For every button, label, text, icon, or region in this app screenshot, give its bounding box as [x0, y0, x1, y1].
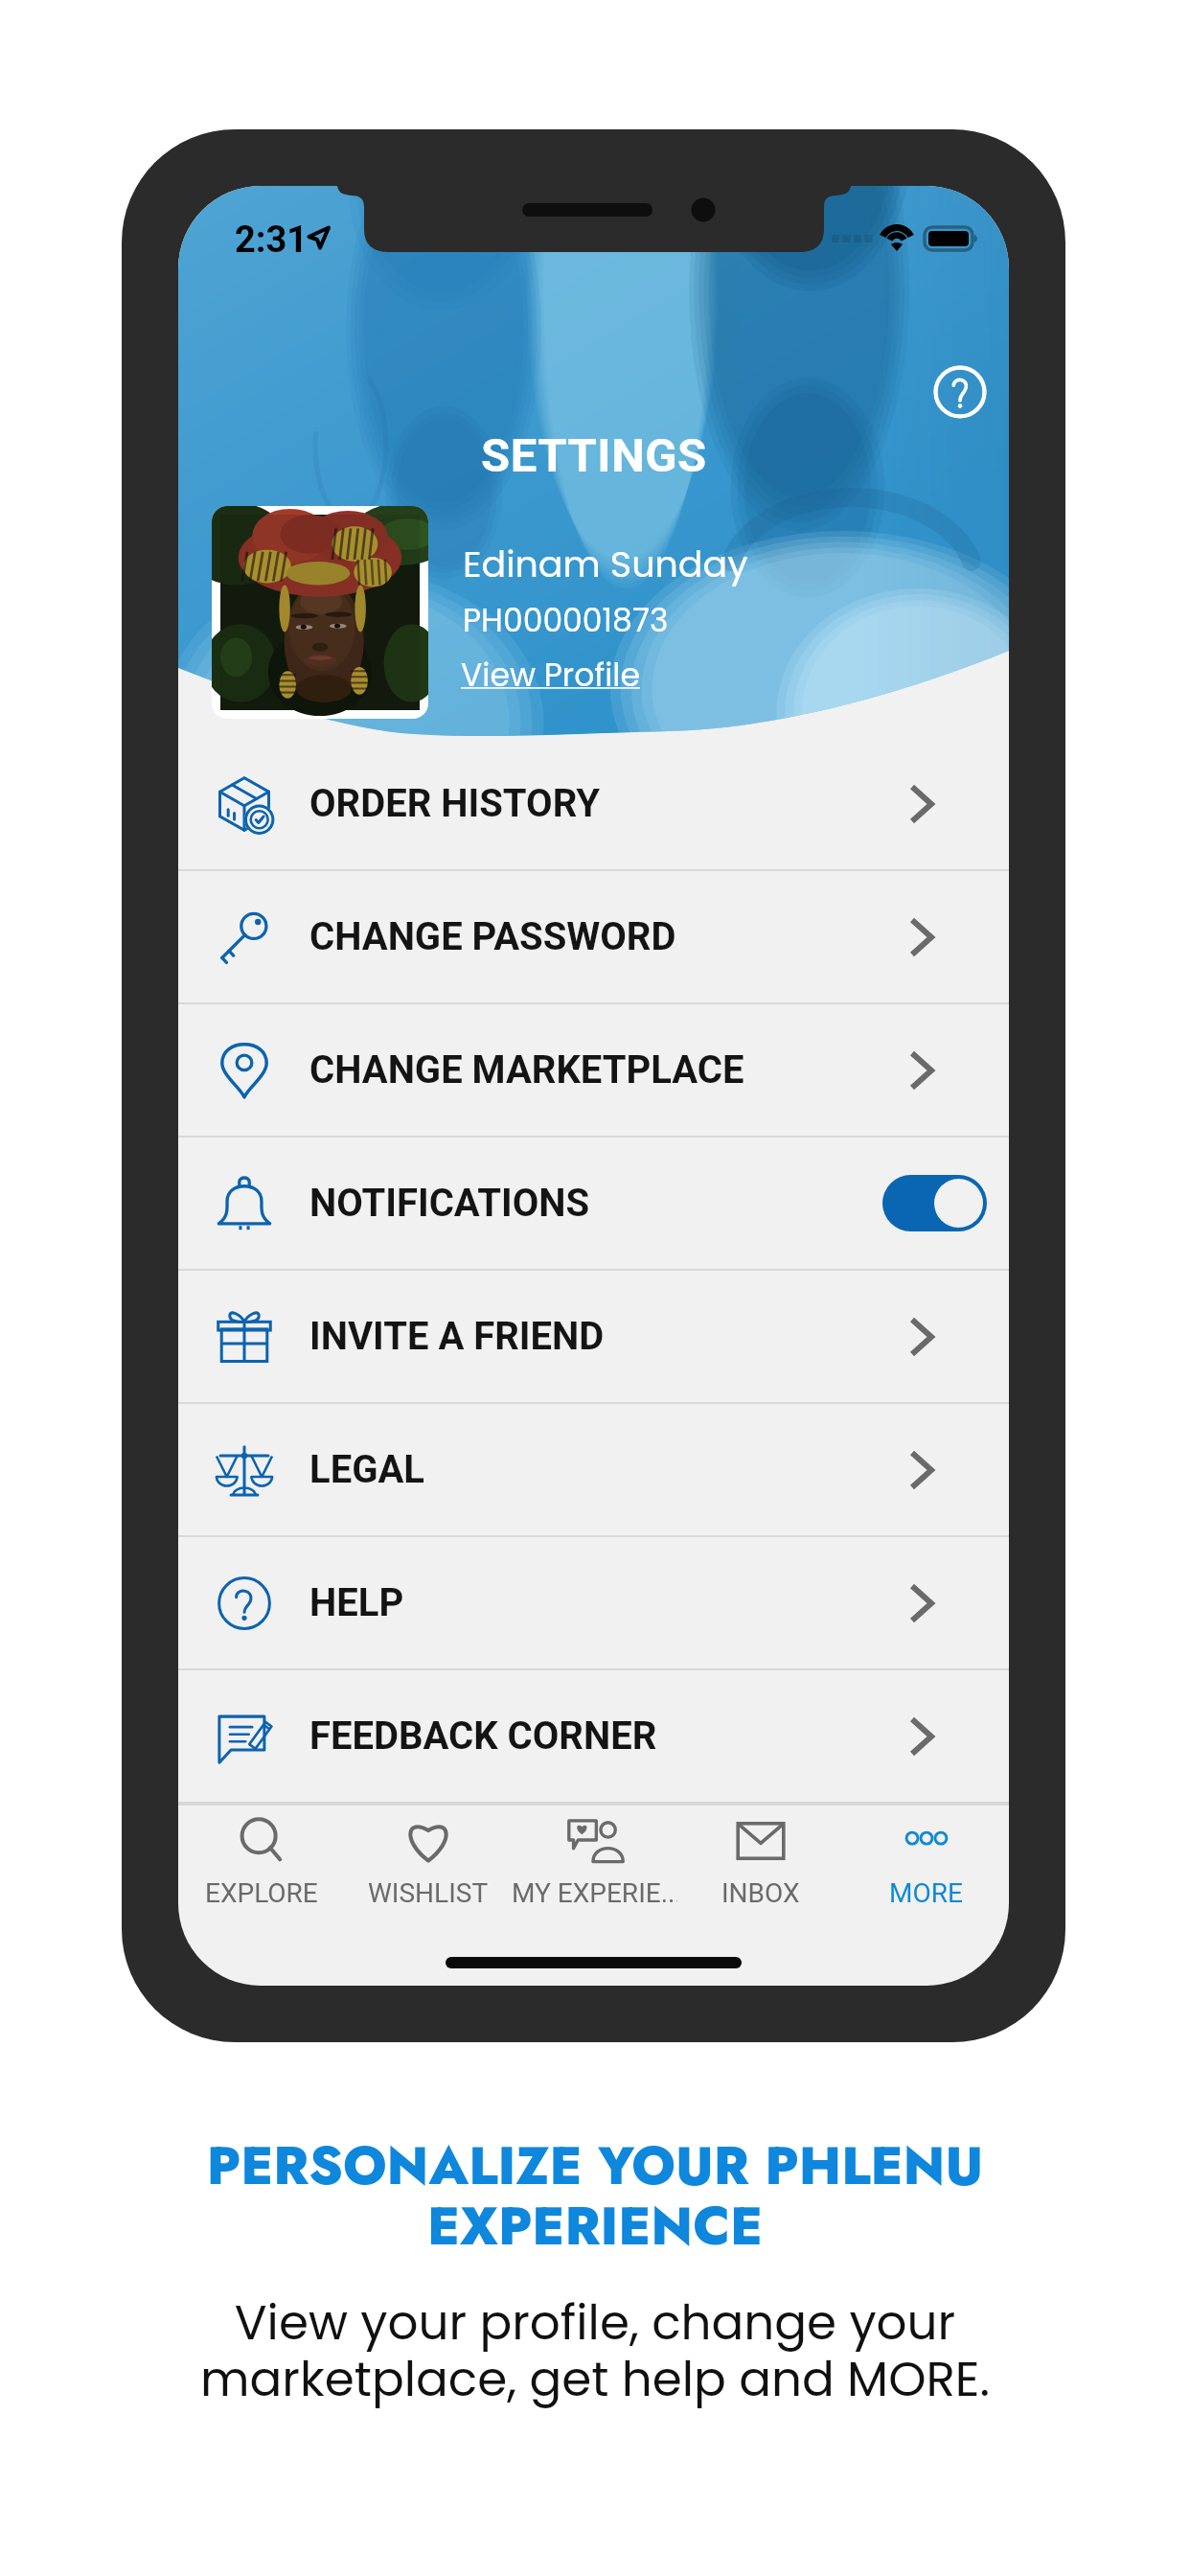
- button[interactable]: Help: [933, 365, 987, 419]
- button[interactable]: EXPLORE: [178, 1804, 345, 1919]
- staticText: Edinam Sunday: [463, 539, 748, 589]
- button[interactable]: NOTIFICATIONS: [178, 1138, 1009, 1269]
- button[interactable]: HELP: [178, 1537, 1009, 1668]
- button[interactable]: ORDER HISTORY: [178, 738, 1009, 869]
- button[interactable]: FEEDBACK CORNER: [178, 1670, 1009, 1802]
- staticText: FEEDBACK CORNER: [309, 1713, 657, 1759]
- staticText: SETTINGS: [481, 428, 707, 483]
- staticText: HELP: [309, 1580, 404, 1625]
- button[interactable]: CHANGE PASSWORD: [178, 871, 1009, 1002]
- staticText: CHANGE MARKETPLACE: [309, 1047, 744, 1092]
- staticText: PH000001873: [463, 598, 669, 642]
- button[interactable]: LEGAL: [178, 1404, 1009, 1535]
- staticText: CHANGE PASSWORD: [309, 914, 676, 959]
- button[interactable]: WISHLIST: [345, 1804, 512, 1919]
- staticText: MY EXPERIE.‌.‌.: [512, 1877, 677, 1909]
- staticText: WISHLIST: [368, 1877, 489, 1909]
- button[interactable]: INBOX: [677, 1804, 843, 1919]
- button[interactable]: CHANGE MARKETPLACE: [178, 1004, 1009, 1136]
- staticText: NOTIFICATIONS: [309, 1181, 590, 1226]
- button[interactable]: MORE: [843, 1804, 1009, 1919]
- staticText: 2:31: [235, 218, 309, 262]
- staticText: View your profile, change your marketpla…: [0, 2289, 1190, 2413]
- staticText: INBOX: [721, 1877, 800, 1909]
- button[interactable]: Profile photo: [212, 506, 428, 719]
- staticText: MORE: [889, 1877, 963, 1909]
- button[interactable]: MY EXPERIE.‌.‌.: [512, 1804, 677, 1919]
- button[interactable]: Notifications toggle: [882, 1175, 987, 1231]
- button[interactable]: View Profile: [461, 653, 640, 697]
- staticText: LEGAL: [309, 1447, 424, 1492]
- staticText: ORDER HISTORY: [309, 781, 601, 826]
- staticText: INVITE A FRIEND: [309, 1314, 605, 1359]
- staticText: View Profile: [461, 653, 640, 697]
- button[interactable]: INVITE A FRIEND: [178, 1271, 1009, 1402]
- staticText: PERSONALIZE YOUR PHLENU EXPERIENCE: [0, 2127, 1190, 2264]
- staticText: EXPLORE: [205, 1877, 318, 1909]
